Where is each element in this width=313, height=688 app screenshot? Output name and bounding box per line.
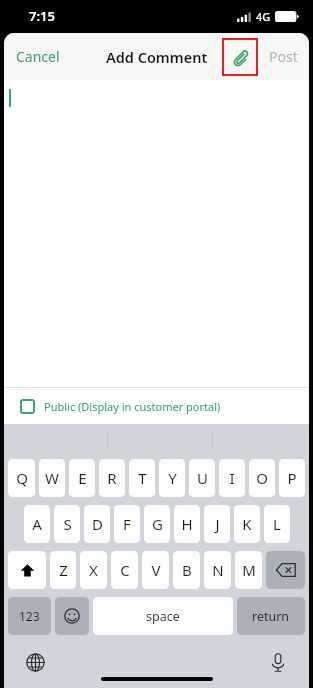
button[interactable]: A: [24, 505, 50, 543]
button[interactable]: Dictation: [265, 649, 291, 675]
staticText: X: [89, 560, 98, 580]
staticText: B: [182, 560, 192, 580]
staticText: J: [215, 514, 220, 534]
staticText: L: [273, 514, 281, 534]
button[interactable]: C: [111, 551, 138, 589]
staticText: H: [181, 514, 193, 534]
button[interactable]: M: [235, 551, 262, 589]
button[interactable]: R: [99, 459, 125, 497]
staticText: F: [123, 514, 131, 534]
staticText: W: [45, 468, 59, 488]
button[interactable]: Post: [258, 37, 309, 76]
button[interactable]: space: [93, 597, 233, 635]
staticText: A: [32, 514, 42, 534]
button[interactable]: Emoji: [55, 597, 89, 635]
button[interactable]: V: [142, 551, 169, 589]
staticText: M: [242, 560, 256, 580]
staticText: Public (Display in customer portal): [44, 399, 221, 414]
staticText: Q: [16, 468, 28, 488]
button[interactable]: Shift: [8, 551, 46, 589]
staticText: E: [78, 468, 87, 488]
button[interactable]: Cancel: [4, 37, 72, 76]
staticText: return: [252, 608, 290, 625]
staticText: Post: [269, 47, 298, 66]
button[interactable]: U: [189, 459, 215, 497]
button[interactable]: O: [249, 459, 275, 497]
staticText: D: [92, 514, 103, 534]
button[interactable]: 123: [8, 597, 51, 635]
button[interactable]: H: [174, 505, 200, 543]
staticText: R: [107, 468, 117, 488]
button[interactable]: W: [39, 459, 65, 497]
staticText: C: [120, 560, 130, 580]
staticText: U: [197, 468, 208, 488]
staticText: Z: [59, 560, 68, 580]
button[interactable]: Z: [50, 551, 76, 589]
button[interactable]: K: [234, 505, 260, 543]
staticText: 7:15: [29, 7, 55, 25]
button[interactable]: X: [80, 551, 107, 589]
staticText: 123: [19, 608, 40, 624]
button[interactable]: return: [237, 597, 305, 635]
staticText: Add Comment: [106, 47, 208, 67]
staticText: N: [212, 560, 224, 580]
button[interactable]: T: [129, 459, 155, 497]
button[interactable]: Y: [159, 459, 185, 497]
staticText: space: [146, 608, 180, 625]
button[interactable]: S: [54, 505, 80, 543]
button[interactable]: F: [114, 505, 140, 543]
button[interactable]: I: [219, 459, 245, 497]
button[interactable]: N: [204, 551, 231, 589]
staticText: 4G: [256, 9, 271, 24]
button[interactable]: G: [144, 505, 170, 543]
button[interactable]: E: [69, 459, 95, 497]
staticText: S: [63, 514, 72, 534]
staticText: G: [152, 514, 163, 534]
button[interactable]: Backspace: [266, 551, 305, 589]
staticText: P: [287, 468, 297, 488]
staticText: I: [229, 468, 235, 488]
staticText: V: [151, 560, 161, 580]
button[interactable]: P: [279, 459, 305, 497]
button[interactable]: D: [84, 505, 110, 543]
button[interactable]: Change keyboard: [22, 649, 48, 675]
button[interactable]: Attach file: [222, 38, 258, 76]
staticText: T: [138, 468, 147, 488]
button[interactable]: B: [173, 551, 200, 589]
button[interactable]: Public (Display in customer portal): [4, 388, 309, 424]
button[interactable]: J: [204, 505, 230, 543]
staticText: O: [256, 468, 268, 488]
button[interactable]: Q: [8, 459, 35, 497]
button[interactable]: L: [264, 505, 290, 543]
staticText: K: [242, 514, 252, 534]
staticText: Y: [168, 468, 177, 488]
staticText: Cancel: [16, 47, 60, 66]
